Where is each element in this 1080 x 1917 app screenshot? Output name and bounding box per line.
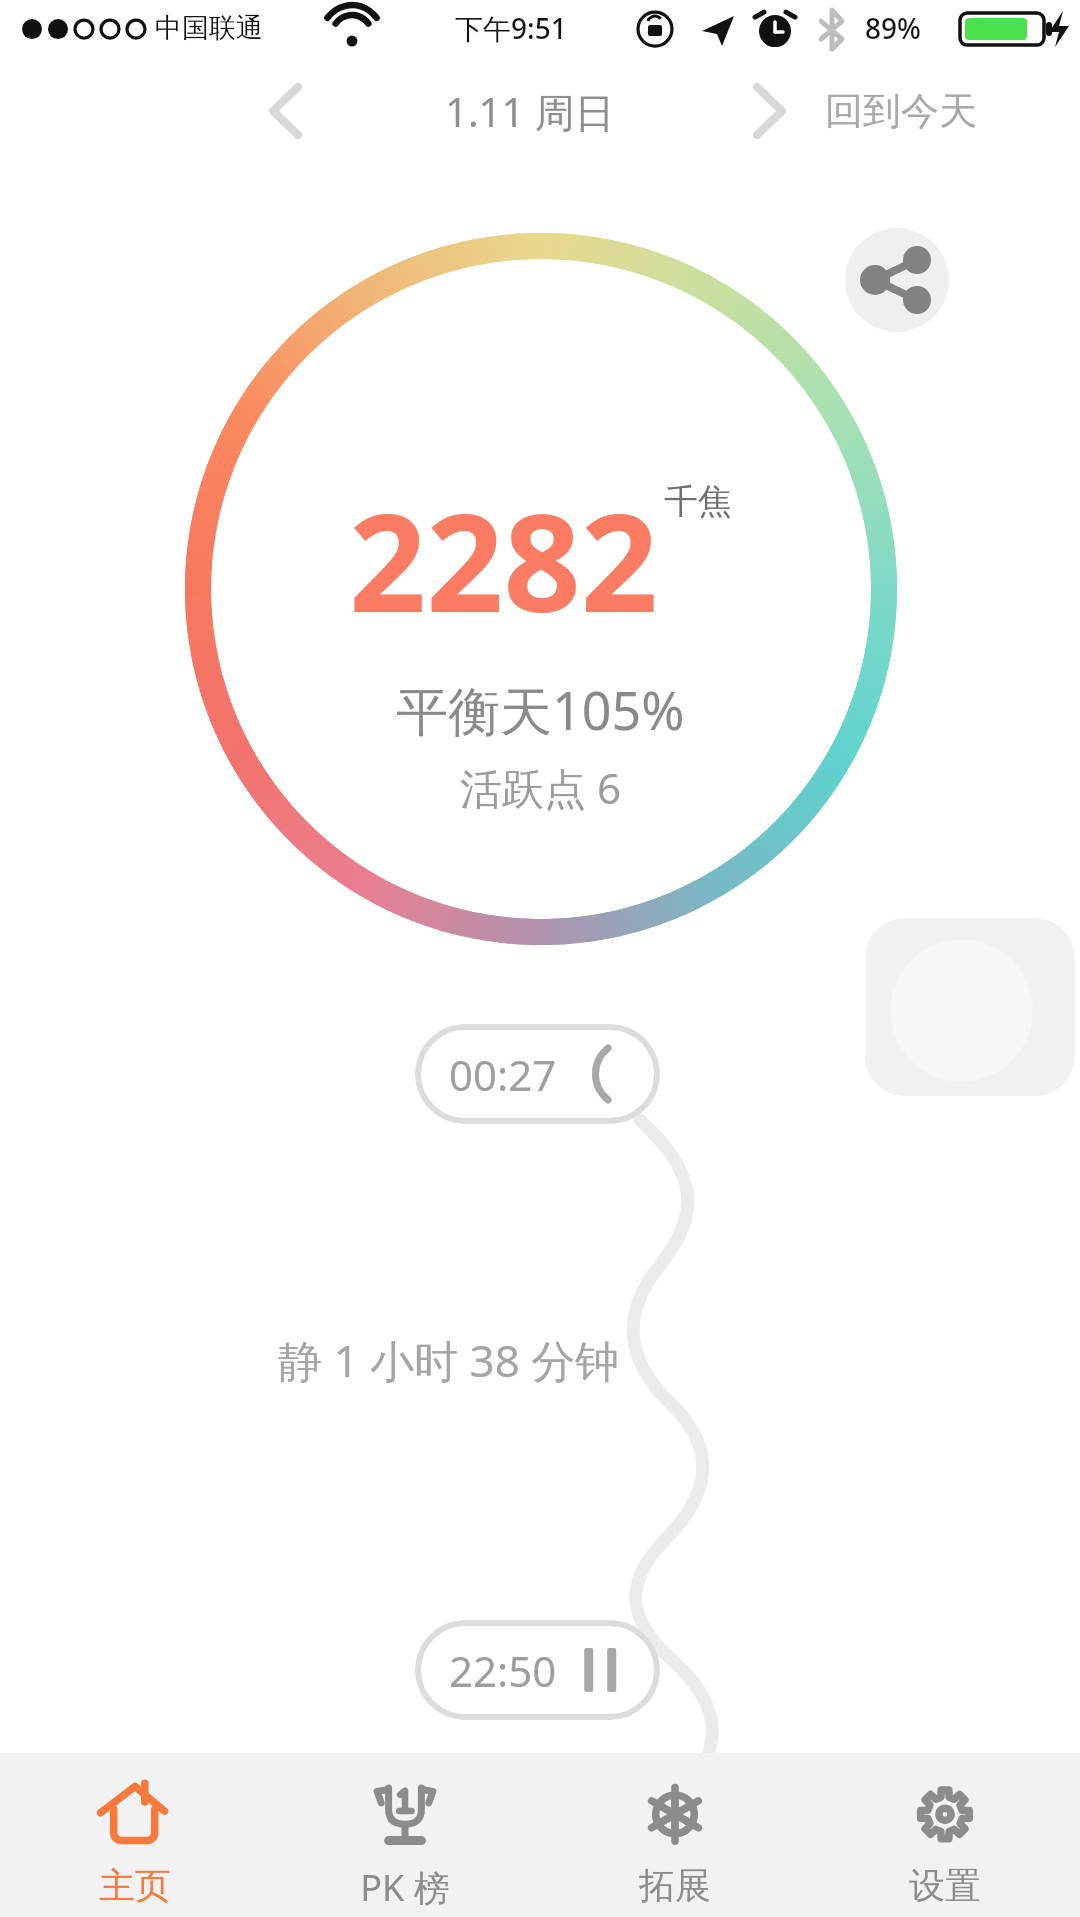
button[interactable]: 主页 [0, 1753, 270, 1917]
staticText: 2282 [349, 468, 658, 652]
button[interactable]: Activity detail [865, 918, 1075, 1096]
button[interactable]: 22:50 [415, 1620, 660, 1720]
staticText: 1.11 周日 [445, 84, 615, 139]
button[interactable]: 拓展 [540, 1753, 810, 1917]
staticText: 00:27 [449, 1046, 557, 1103]
staticText: 回到今天 [825, 87, 977, 135]
button[interactable]: Previous day [250, 76, 320, 146]
staticText: 中国联通 [155, 11, 263, 45]
staticText: 静 1 小时 38 分钟 [278, 1330, 620, 1390]
button[interactable]: Next day [735, 76, 805, 146]
button[interactable]: 回到今天 [825, 87, 977, 135]
button[interactable]: 00:27 [415, 1024, 660, 1124]
staticText: 设置 [909, 1863, 981, 1908]
button[interactable]: Share [845, 228, 949, 332]
button[interactable]: PK 榜 [270, 1753, 540, 1917]
staticText: 活跃点 6 [460, 759, 621, 816]
button[interactable]: 1.11 周日 [445, 84, 615, 139]
staticText: 22:50 [449, 1642, 557, 1699]
button[interactable]: 设置 [810, 1753, 1080, 1917]
staticText: 平衡天105% [396, 674, 685, 745]
staticText: 主页 [99, 1863, 171, 1908]
staticText: 89% [865, 9, 921, 47]
staticText: 拓展 [639, 1863, 711, 1908]
staticText: 下午9:51 [455, 9, 567, 47]
staticText: PK 榜 [360, 1863, 450, 1912]
staticText: 千焦 [664, 480, 732, 523]
